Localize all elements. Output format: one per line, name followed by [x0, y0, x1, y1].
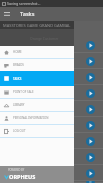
staticText: POWERED BY — [8, 168, 25, 172]
button[interactable]: PERSONAL INFORMATION — [0, 112, 74, 124]
staticText: LOG OUT — [13, 129, 26, 133]
button[interactable]: TASKS — [0, 71, 74, 86]
other: Play — [86, 181, 95, 183]
other: Play — [86, 153, 95, 162]
staticText: PERSONAL INFORMATION — [13, 116, 49, 120]
button[interactable]: Play — [0, 149, 103, 165]
other: Play — [86, 105, 95, 114]
button[interactable]: POINT OF SALE — [0, 86, 74, 98]
button[interactable]: LOG OUT — [0, 125, 74, 137]
other: Play — [86, 89, 95, 98]
staticText: ORPHEUS — [9, 173, 36, 181]
button[interactable]: BREADS — [0, 59, 74, 71]
button[interactable]: HOME — [0, 46, 74, 58]
other: Play — [86, 73, 95, 82]
other: Play — [86, 121, 95, 130]
staticText: Saving screenshot... — [7, 1, 41, 6]
staticText: POINT OF SALE — [13, 90, 34, 94]
staticText: Orange Customer — [30, 36, 59, 41]
button[interactable]: Play — [0, 133, 103, 149]
other: Play — [86, 41, 95, 50]
staticText: HOME — [13, 50, 22, 54]
button[interactable]: Play — [0, 181, 103, 183]
staticText: LIBRARY — [13, 103, 25, 107]
other: Play — [86, 137, 95, 146]
button[interactable]: Play — [0, 117, 103, 133]
button[interactable]: Play — [0, 165, 103, 181]
button[interactable]: Play — [0, 101, 103, 117]
button[interactable]: LIBRARY — [0, 99, 74, 111]
button[interactable]: Play — [0, 69, 103, 85]
other: Play — [86, 169, 95, 178]
staticText: BREADS — [13, 63, 24, 67]
button[interactable]: Open navigation drawer — [0, 7, 14, 21]
staticText: Tasks — [20, 10, 35, 18]
button[interactable]: Play — [0, 53, 103, 69]
staticText: MASSTORES GAME GRAND GAMBAL — [3, 23, 71, 28]
other: Play — [86, 57, 95, 66]
staticText: TASKS — [13, 77, 22, 81]
button[interactable]: Play — [0, 85, 103, 101]
button[interactable]: Play — [0, 37, 103, 53]
